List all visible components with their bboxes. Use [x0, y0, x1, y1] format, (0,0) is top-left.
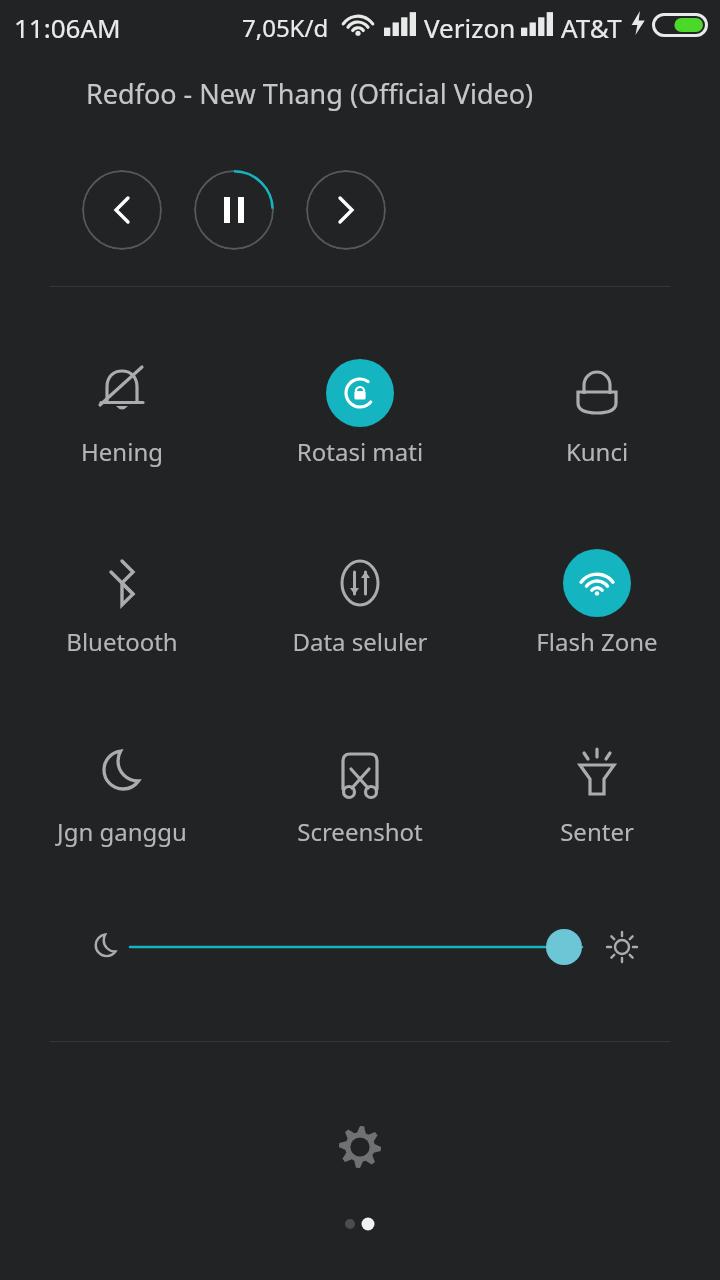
staticText: Verizon [424, 10, 516, 45]
staticText: 11:06AM [14, 10, 121, 45]
button[interactable]: Previous [82, 170, 162, 250]
staticText: Hening [7, 435, 237, 468]
button[interactable]: Senter [482, 739, 712, 869]
button[interactable]: Next [306, 170, 386, 250]
button[interactable]: Data seluler [245, 549, 475, 679]
staticText: Jgn ganggu [7, 815, 237, 848]
staticText: Screenshot [245, 815, 475, 848]
button[interactable]: Pause [194, 170, 274, 250]
button[interactable]: Flash Zone [482, 549, 712, 679]
staticText: Kunci [482, 435, 712, 468]
staticText: AT&T [561, 10, 622, 45]
staticText: Bluetooth [7, 625, 237, 658]
button[interactable]: Screenshot [245, 739, 475, 869]
button[interactable]: Kunci [482, 359, 712, 489]
button[interactable]: Brightness [60, 905, 660, 989]
staticText: Redfoo - New Thang (Official Video) [86, 75, 534, 112]
staticText: Flash Zone [482, 625, 712, 658]
button[interactable]: Hening [7, 359, 237, 489]
staticText: 7,05K/d [242, 11, 329, 44]
button[interactable]: Jgn ganggu [7, 739, 237, 869]
button[interactable]: Bluetooth [7, 549, 237, 679]
staticText: Data seluler [245, 625, 475, 658]
staticText: Rotasi mati [245, 435, 475, 468]
button[interactable]: Rotasi mati [245, 359, 475, 489]
staticText: Senter [482, 815, 712, 848]
button[interactable]: Settings [324, 1111, 396, 1183]
